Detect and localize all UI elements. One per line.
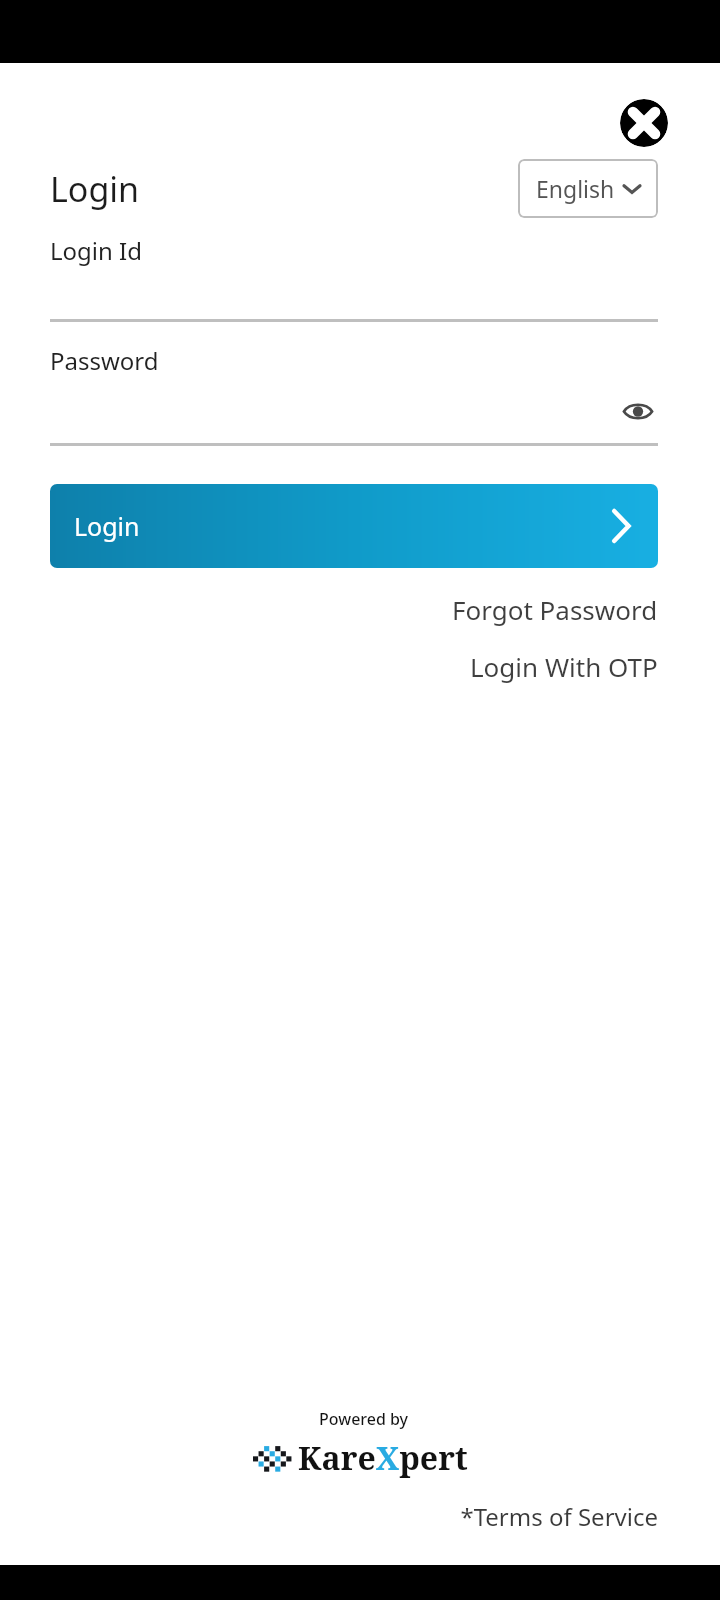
staticText: Login — [50, 166, 140, 212]
button[interactable]: Login — [50, 484, 658, 568]
button[interactable]: Login With OTP — [470, 643, 658, 690]
staticText: *Terms of Service — [460, 1500, 658, 1533]
staticText: Login With OTP — [470, 649, 658, 684]
staticText: Login — [74, 509, 140, 543]
staticText: English — [536, 173, 615, 204]
button[interactable]: *Terms of Service — [460, 1496, 658, 1537]
button[interactable]: English — [518, 159, 658, 218]
button[interactable]: Show password — [618, 391, 658, 431]
staticText: KareXpert — [298, 1436, 468, 1480]
button[interactable]: Close — [620, 99, 668, 147]
staticText: Login Id — [50, 234, 143, 267]
button[interactable]: Forgot Password — [452, 586, 658, 633]
staticText: Password — [50, 344, 159, 377]
staticText: Forgot Password — [452, 592, 658, 627]
staticText: Powered by — [319, 1408, 409, 1430]
